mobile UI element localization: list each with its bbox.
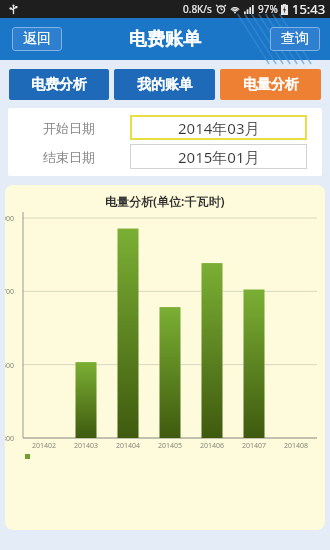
staticText: 15:43	[292, 0, 326, 18]
staticText: 结束日期	[43, 149, 95, 165]
button[interactable]: 电费分析	[9, 69, 109, 100]
staticText: 0.8K/s	[183, 2, 212, 16]
staticText: 900	[5, 214, 15, 224]
staticText: 201404	[116, 441, 141, 451]
staticText: 500	[5, 361, 15, 371]
staticText: 201402	[32, 441, 57, 451]
staticText: 201405	[158, 441, 183, 451]
staticText: 查询	[281, 30, 309, 48]
staticText: 97%	[258, 2, 278, 16]
staticText: 2015年01月	[178, 147, 260, 167]
staticText: 我的账单	[137, 76, 193, 94]
staticText: 201407	[242, 441, 267, 451]
staticText: 电量分析	[243, 76, 299, 94]
button[interactable]: 我的账单	[114, 69, 215, 100]
staticText: 201406	[200, 441, 225, 451]
staticText: 201403	[74, 441, 99, 451]
staticText: 电费分析	[31, 76, 87, 94]
staticText: 开始日期	[43, 120, 95, 136]
button[interactable]: 查询	[270, 27, 320, 51]
button[interactable]: 2015年01月	[130, 144, 307, 169]
staticText: 700	[5, 287, 15, 297]
button[interactable]: 电量分析	[220, 69, 321, 100]
staticText: 返回	[23, 30, 51, 48]
button[interactable]: 2014年03月	[130, 115, 307, 140]
staticText: 电量分析(单位:千瓦时)	[105, 193, 225, 209]
button[interactable]: 返回	[12, 27, 62, 51]
staticText: 电费账单	[129, 28, 201, 51]
staticText: 300	[5, 434, 15, 444]
staticText: 2014年03月	[178, 118, 260, 138]
staticText: 201408	[284, 441, 309, 451]
